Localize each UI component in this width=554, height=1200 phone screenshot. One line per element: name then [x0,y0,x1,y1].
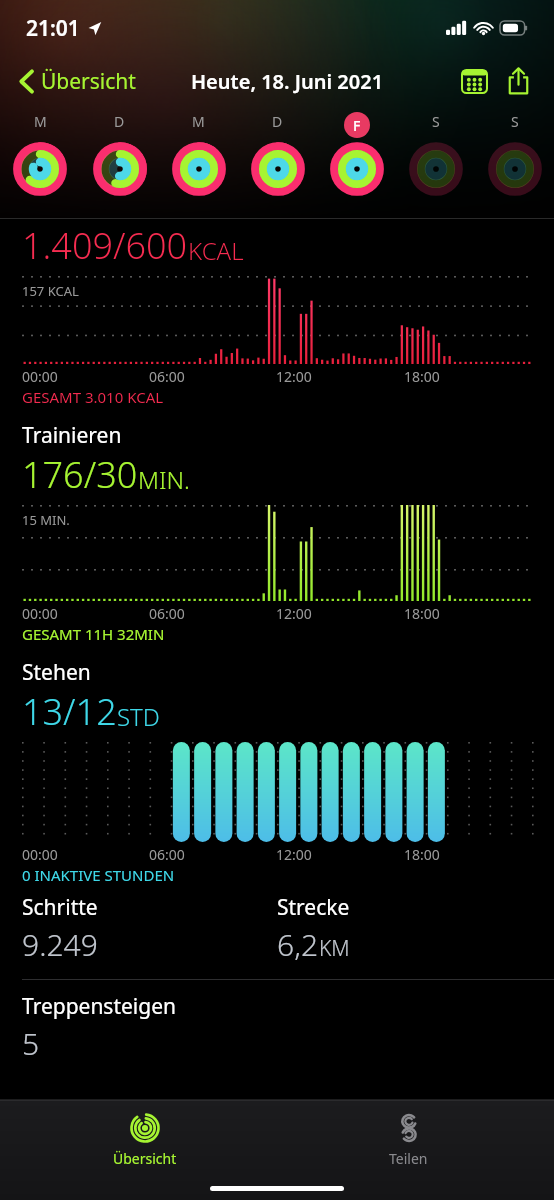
staticText: 00:00 [22,604,149,623]
staticText: 157 KCAL [22,282,79,300]
staticText: KCAL [188,234,244,267]
staticText: 18:00 [404,604,532,623]
staticText: Heute, 18. Juni 2021 [191,68,384,95]
button[interactable]: Tag S [396,142,475,196]
staticText: D [272,112,283,131]
staticText: 6,2 [277,924,319,965]
staticText: 1.409/600 [22,221,188,270]
button[interactable]: Tag D [238,142,317,196]
staticText: 18:00 [404,845,532,864]
staticText: 00:00 [22,845,149,864]
staticText: KM [319,934,350,963]
staticText: Teilen [389,1149,428,1168]
staticText: D [114,112,125,131]
button[interactable]: Kalender [452,59,496,103]
button[interactable]: Tag D [80,142,159,196]
button[interactable]: Teilen [339,1106,478,1172]
staticText: S [511,112,519,131]
staticText: 12:00 [276,367,404,386]
staticText: 5 [22,1023,40,1064]
staticText: Übersicht [41,67,136,96]
staticText: M [34,112,47,131]
staticText: 18:00 [404,367,532,386]
button[interactable]: Übersicht [75,1106,214,1172]
staticText: 00:00 [22,367,149,386]
button[interactable]: Übersicht [16,61,140,102]
staticText: Strecke [277,893,350,922]
staticText: STD [117,700,160,733]
staticText: Schritte [22,893,98,922]
staticText: 12:00 [276,845,404,864]
staticText: 12:00 [276,604,404,623]
staticText: M [192,112,205,131]
staticText: 06:00 [149,367,276,386]
staticText: 9.249 [22,924,98,965]
staticText: 176/30 [22,450,138,499]
button[interactable]: Stehen [0,644,554,885]
staticText: F [353,116,361,135]
staticText: Stehen [22,658,91,687]
staticText: GESAMT 3.010 KCAL [22,387,164,407]
staticText: 0 INAKTIVE STUNDEN [22,865,175,885]
staticText: Treppensteigen [22,992,177,1021]
button[interactable]: Tag S [475,142,554,196]
button[interactable]: Tag M [159,142,238,196]
staticText: 15 MIN. [22,511,70,529]
staticText: GESAMT 11H 32MIN [22,624,165,644]
button[interactable]: Teilen [496,59,540,103]
staticText: 06:00 [149,845,276,864]
staticText: S [432,112,440,131]
button[interactable]: Tag F [317,142,396,196]
button[interactable]: 1.409/600 [0,221,554,407]
staticText: Trainieren [22,421,122,450]
staticText: 21:01 [26,14,80,43]
button[interactable]: Tag M [0,142,80,196]
staticText: 13/12 [22,687,117,736]
button[interactable]: Trainieren [0,407,554,644]
staticText: MIN. [138,463,190,496]
staticText: Übersicht [113,1149,177,1168]
staticText: 06:00 [149,604,276,623]
